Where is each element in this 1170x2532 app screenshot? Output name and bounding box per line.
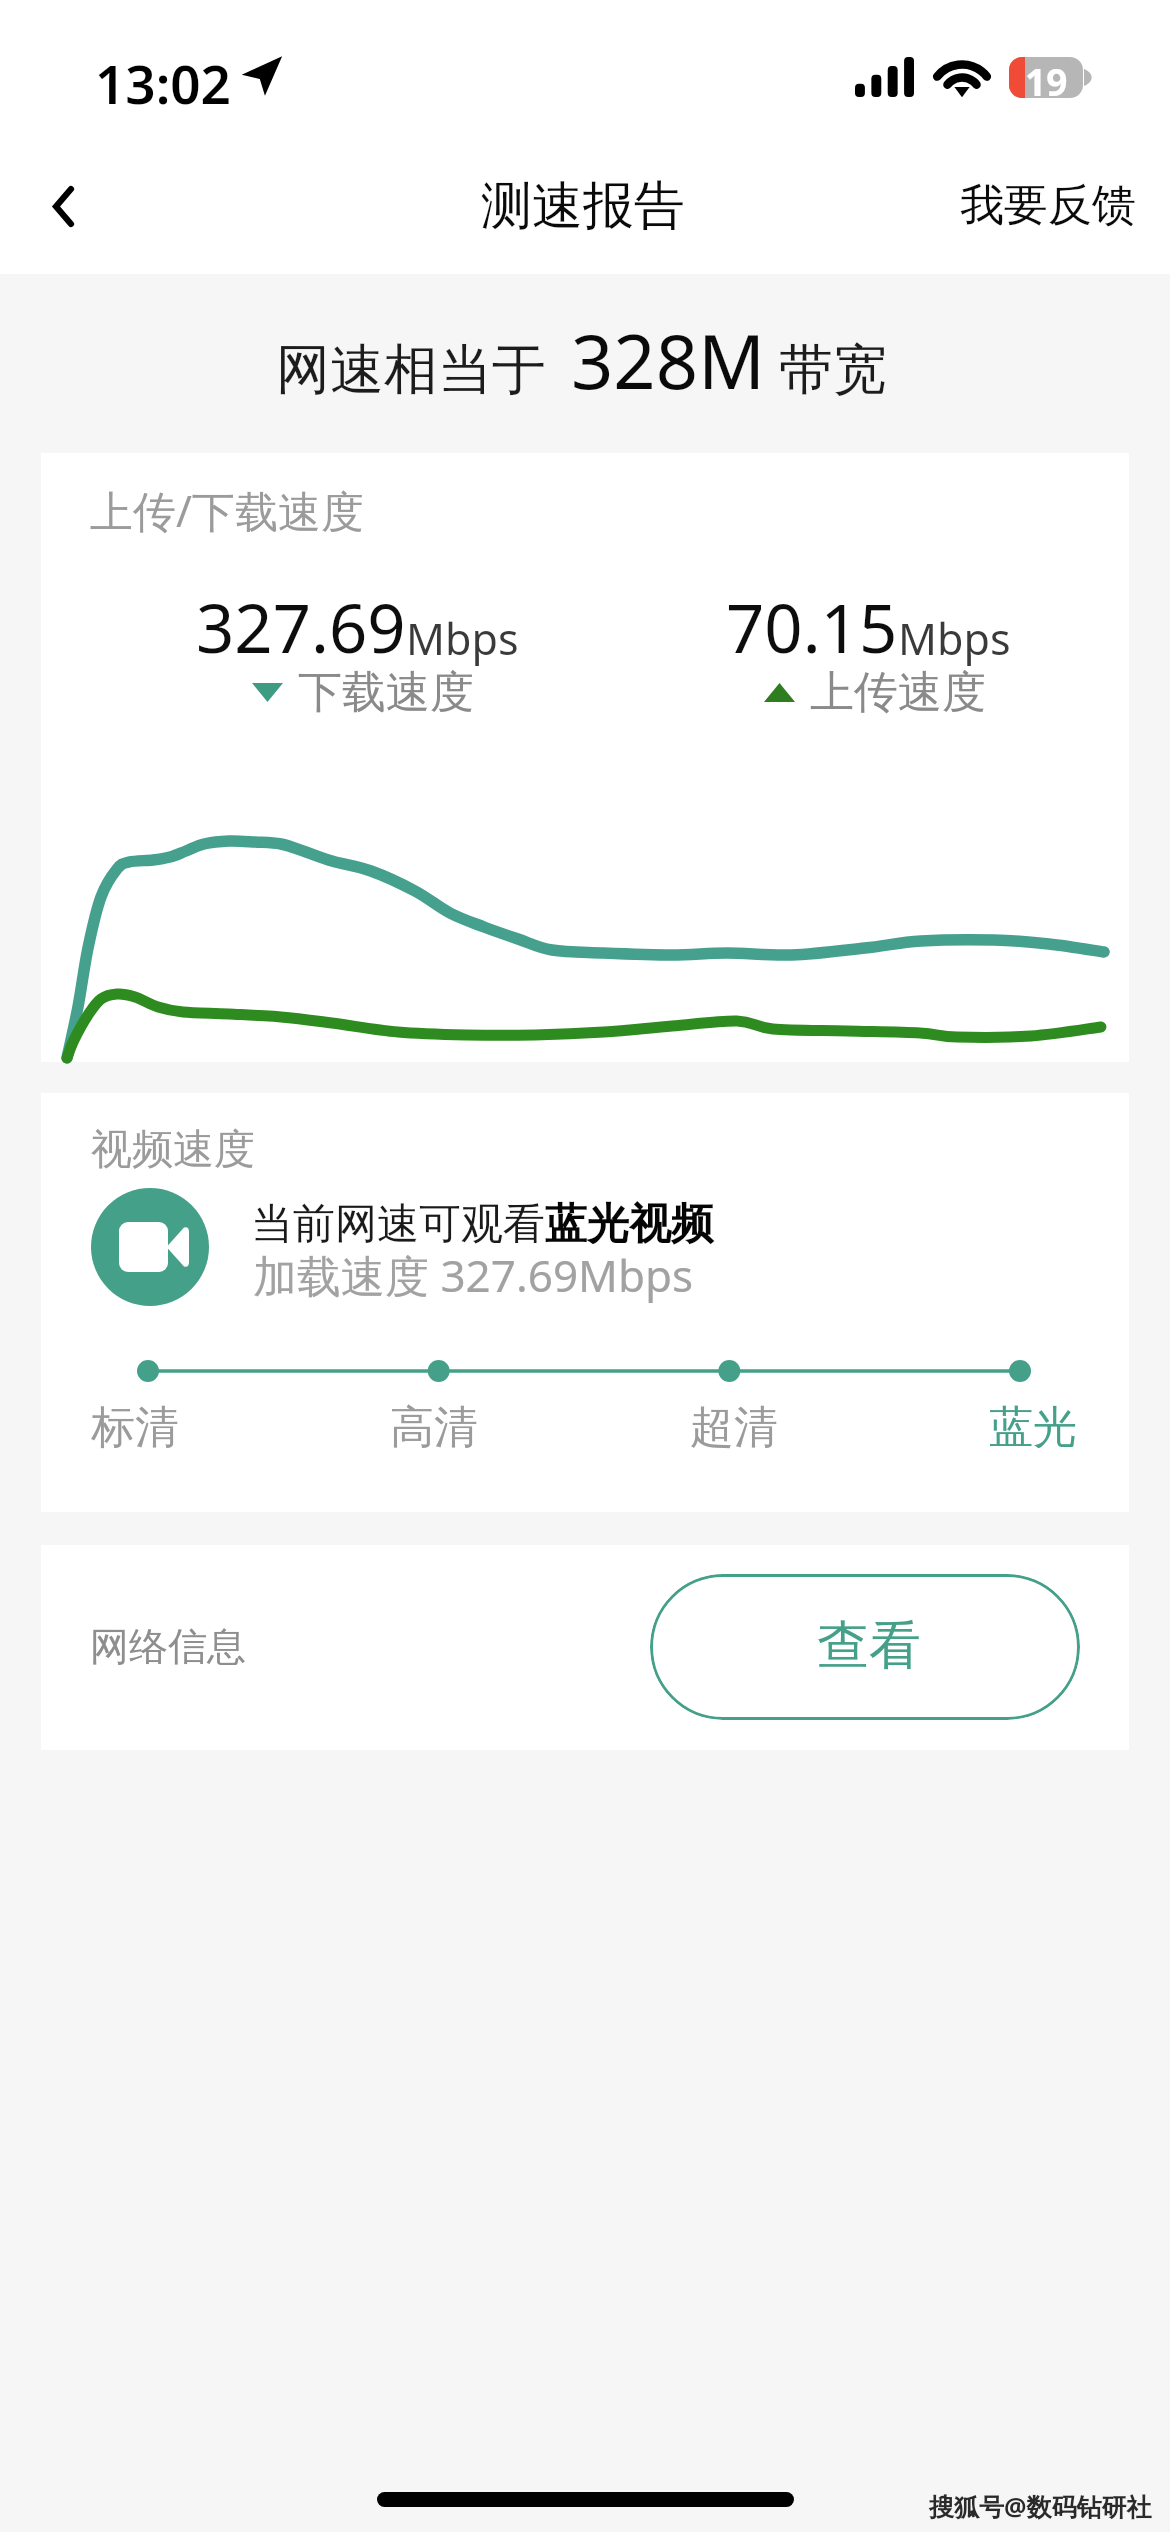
staticText: 标清 (91, 1400, 179, 1455)
button[interactable]: 查看 (650, 1574, 1080, 1720)
button[interactable]: Back (8, 120, 118, 274)
staticText: 13:02 (95, 47, 231, 119)
staticText: 网速相当于 (276, 336, 546, 404)
staticText: Mbps (406, 609, 519, 668)
staticText: 328M (571, 310, 766, 411)
staticText: 加载速度 327.69Mbps (253, 1245, 694, 1305)
staticText: 上传速度 (810, 665, 986, 720)
staticText: 327.69 (196, 581, 406, 672)
staticText: 超清 (690, 1400, 778, 1455)
staticText: 搜狐号@数码钻研社 (929, 2489, 1152, 2523)
button[interactable]: 我要反馈 (924, 120, 1170, 274)
staticText: 下载速度 (298, 665, 474, 720)
staticText: 查看 (817, 1613, 921, 1679)
staticText: 高清 (390, 1400, 478, 1455)
staticText: 带宽 (779, 336, 887, 404)
staticText: 视频速度 (91, 1124, 255, 1176)
staticText: 当前网速可观看 (251, 1198, 545, 1251)
staticText: 19 (1025, 56, 1068, 97)
staticText: 网络信息 (90, 1622, 246, 1671)
staticText: 上传/下载速度 (90, 481, 364, 540)
staticText: 蓝光 (989, 1400, 1077, 1455)
staticText: Mbps (898, 609, 1011, 668)
staticText: 测速报告 (481, 174, 685, 238)
staticText: 我要反馈 (960, 178, 1136, 233)
staticText: 蓝光视频 (545, 1198, 713, 1251)
staticText: 70.15 (726, 581, 898, 672)
